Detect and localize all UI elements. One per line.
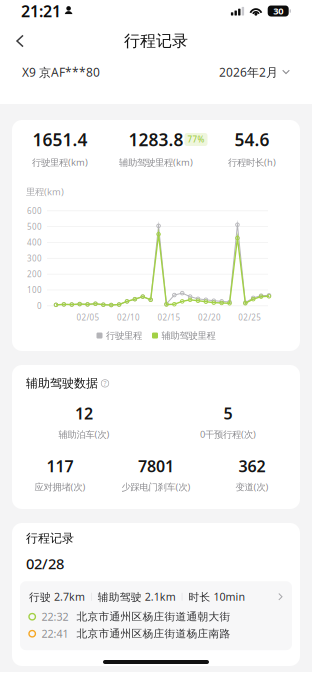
staticText: 77% <box>187 134 204 145</box>
staticText: 30 <box>273 5 283 17</box>
staticText: 0干预行程(次) <box>200 428 256 440</box>
staticText: 02/15 <box>157 312 180 323</box>
staticText: 02/10 <box>117 312 140 323</box>
staticText: 400 <box>27 237 42 248</box>
staticText: 12 <box>75 403 93 424</box>
staticText: 0 <box>37 300 42 311</box>
staticText: 1651.4 <box>32 128 87 151</box>
staticText: 1283.8 <box>128 128 183 151</box>
staticText: 22:41 <box>41 627 68 641</box>
staticText: 22:32 <box>41 610 68 624</box>
staticText: 02/28 <box>26 554 64 573</box>
staticText: 辅助驾驶数据 <box>26 376 98 391</box>
staticText: 300 <box>27 253 42 264</box>
staticText: 7801 <box>138 455 174 477</box>
staticText: 北京市通州区杨庄街道杨庄南路 <box>76 627 230 640</box>
staticText: 北京市通州区杨庄街道通朝大街 <box>76 610 230 623</box>
staticText: 600 <box>27 205 42 216</box>
staticText: 行驶 2.7km <box>29 590 85 604</box>
staticText: 02/20 <box>198 312 221 323</box>
staticText: 应对拥堵(次) <box>34 481 85 493</box>
staticText: 行程记录 <box>26 531 74 546</box>
button[interactable]: 返回 <box>0 26 40 56</box>
staticText: 少踩电门刹车(次) <box>121 481 190 493</box>
staticText: 117 <box>46 455 73 477</box>
staticText: 行驶里程(km) <box>32 156 88 168</box>
staticText: 行程时长(h) <box>228 156 276 168</box>
staticText: 辅助驾驶里程 <box>161 330 215 341</box>
staticText: 500 <box>27 221 42 232</box>
staticText: 行程记录 <box>124 31 188 51</box>
staticText: 辅助驾驶 2.1km <box>98 590 176 604</box>
button[interactable]: 2026年2月 <box>219 64 290 80</box>
staticText: 02/05 <box>77 312 100 323</box>
staticText: 54.6 <box>234 128 269 151</box>
staticText: 362 <box>238 455 265 477</box>
staticText: 100 <box>27 285 42 295</box>
staticText: 时长 10min <box>188 590 245 604</box>
staticText: 辅助驾驶里程(km) <box>119 156 193 168</box>
staticText: X9 京AF***80 <box>22 64 100 80</box>
staticText: 行驶里程 <box>106 330 142 341</box>
button[interactable]: 行驶 2.7km <box>20 581 292 650</box>
staticText: ? <box>103 379 106 388</box>
staticText: 200 <box>27 269 42 279</box>
staticText: 2026年2月 <box>219 64 278 80</box>
staticText: 5 <box>223 403 232 424</box>
staticText: 02/25 <box>238 312 261 323</box>
staticText: 里程(km) <box>26 185 64 198</box>
staticText: 变道(次) <box>235 481 268 493</box>
staticText: 辅助泊车(次) <box>58 428 109 440</box>
staticText: 21:21 <box>21 0 61 22</box>
